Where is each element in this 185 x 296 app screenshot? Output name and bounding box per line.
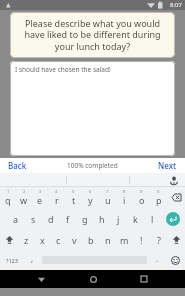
staticText: k — [133, 213, 138, 225]
staticText: o — [139, 194, 145, 206]
staticText: f — [66, 213, 70, 225]
staticText: 8 — [123, 189, 126, 194]
staticText: c — [56, 234, 61, 246]
button[interactable]: 5 — [65, 187, 82, 208]
staticText: 1 — [7, 189, 10, 194]
button[interactable]: c — [50, 229, 66, 250]
staticText: p — [156, 194, 162, 206]
button[interactable]: f — [59, 208, 76, 229]
button[interactable]: s — [25, 208, 42, 229]
staticText: I should have chosen the salad! — [15, 65, 111, 74]
button[interactable]: j — [110, 208, 127, 229]
staticText: ?123 — [6, 257, 18, 264]
staticText: ? — [157, 234, 161, 246]
button[interactable]: , — [24, 250, 40, 270]
staticText: Next — [158, 160, 177, 171]
button[interactable]: Shift right — [167, 229, 185, 250]
staticText: d — [48, 213, 54, 225]
staticText: u — [105, 194, 111, 206]
staticText: r — [55, 194, 59, 206]
button[interactable]: m — [116, 229, 133, 250]
button[interactable]: I should have chosen the salad! — [10, 61, 175, 156]
staticText: s — [31, 213, 36, 225]
button[interactable]: Enter — [161, 208, 185, 229]
staticText: 5 — [72, 189, 75, 194]
button[interactable]: 7 — [99, 187, 116, 208]
button[interactable]: 0 — [150, 187, 167, 208]
button[interactable]: 6 — [82, 187, 99, 208]
staticText: n — [105, 234, 111, 246]
button[interactable]: d — [42, 208, 59, 229]
staticText: 0 — [157, 189, 160, 194]
button[interactable]: h — [93, 208, 110, 229]
button[interactable]: g — [76, 208, 93, 229]
staticText: 2 — [23, 189, 26, 194]
staticText: m — [120, 234, 129, 246]
staticText: Please describe what you would have like… — [16, 17, 169, 53]
button[interactable]: z — [18, 229, 34, 250]
button[interactable]: x — [34, 229, 50, 250]
staticText: 4 — [55, 189, 58, 194]
button[interactable]: a — [7, 208, 25, 229]
button[interactable]: Home — [82, 270, 104, 288]
button[interactable]: l — [144, 208, 161, 229]
staticText: , — [31, 253, 34, 264]
button[interactable]: 3 — [32, 187, 48, 208]
button[interactable]: Recent apps — [133, 270, 155, 288]
button[interactable]: Back — [30, 270, 52, 288]
button[interactable]: . — [149, 250, 165, 270]
button[interactable]: 2 — [16, 187, 32, 208]
button[interactable]: Emoji — [165, 250, 185, 270]
button[interactable]: ? — [150, 229, 167, 250]
button[interactable]: 8 — [116, 187, 133, 208]
button[interactable]: ?123 — [0, 250, 24, 270]
staticText: y — [88, 194, 93, 206]
staticText: ! — [140, 234, 143, 246]
button[interactable]: Voice input — [163, 173, 185, 187]
button[interactable]: Shift — [0, 229, 18, 250]
button[interactable]: 4 — [48, 187, 65, 208]
button[interactable]: Back — [0, 158, 35, 173]
staticText: 100% completed — [67, 161, 118, 170]
staticText: 7 — [106, 189, 109, 194]
staticText: 8:07 — [170, 1, 182, 9]
staticText: e — [37, 194, 43, 206]
button[interactable]: Backspace — [167, 187, 185, 208]
button[interactable]: b — [82, 229, 99, 250]
staticText: h — [99, 213, 105, 225]
staticText: j — [117, 213, 120, 225]
staticText: q — [5, 194, 11, 206]
staticText: Back — [8, 160, 27, 171]
button[interactable]: 1 — [0, 187, 16, 208]
staticText: t — [72, 194, 76, 206]
button[interactable]: k — [127, 208, 144, 229]
staticText: 3 — [39, 189, 42, 194]
button[interactable]: n — [99, 229, 116, 250]
staticText: 9 — [140, 189, 143, 194]
button[interactable]: 9 — [133, 187, 150, 208]
staticText: l — [151, 213, 154, 225]
staticText: a — [13, 213, 19, 225]
button[interactable]: ! — [133, 229, 150, 250]
staticText: 6 — [89, 189, 92, 194]
staticText: w — [20, 194, 28, 206]
button[interactable]: Next — [150, 158, 185, 173]
staticText: x — [40, 234, 45, 246]
staticText: g — [82, 213, 88, 225]
staticText: i — [123, 194, 126, 206]
staticText: v — [72, 234, 77, 246]
button[interactable]: v — [66, 229, 82, 250]
staticText: . — [156, 253, 159, 264]
staticText: z — [24, 234, 29, 246]
staticText: b — [88, 234, 94, 246]
